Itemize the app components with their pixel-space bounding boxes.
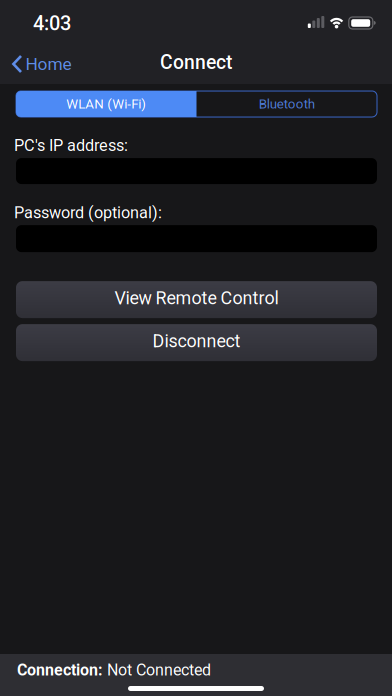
staticText: PC's IP address: <box>14 136 128 155</box>
button[interactable]: Disconnect <box>16 324 377 361</box>
staticText: Home <box>25 54 71 74</box>
staticText: 4:03 <box>33 12 71 35</box>
staticText: View Remote Control <box>114 288 278 309</box>
staticText: Password (optional): <box>14 203 162 222</box>
staticText: WLAN (Wi-Fi) <box>66 96 146 112</box>
staticText: Bluetooth <box>259 96 315 112</box>
button[interactable]: Home <box>0 54 71 74</box>
button[interactable]: Bluetooth <box>196 91 377 117</box>
button[interactable]: WLAN (Wi-Fi) <box>16 91 196 117</box>
staticText: Connection: Not Connected <box>17 661 211 679</box>
staticText: Connect <box>160 51 232 74</box>
staticText: Disconnect <box>152 331 240 352</box>
button[interactable]: View Remote Control <box>16 281 377 318</box>
